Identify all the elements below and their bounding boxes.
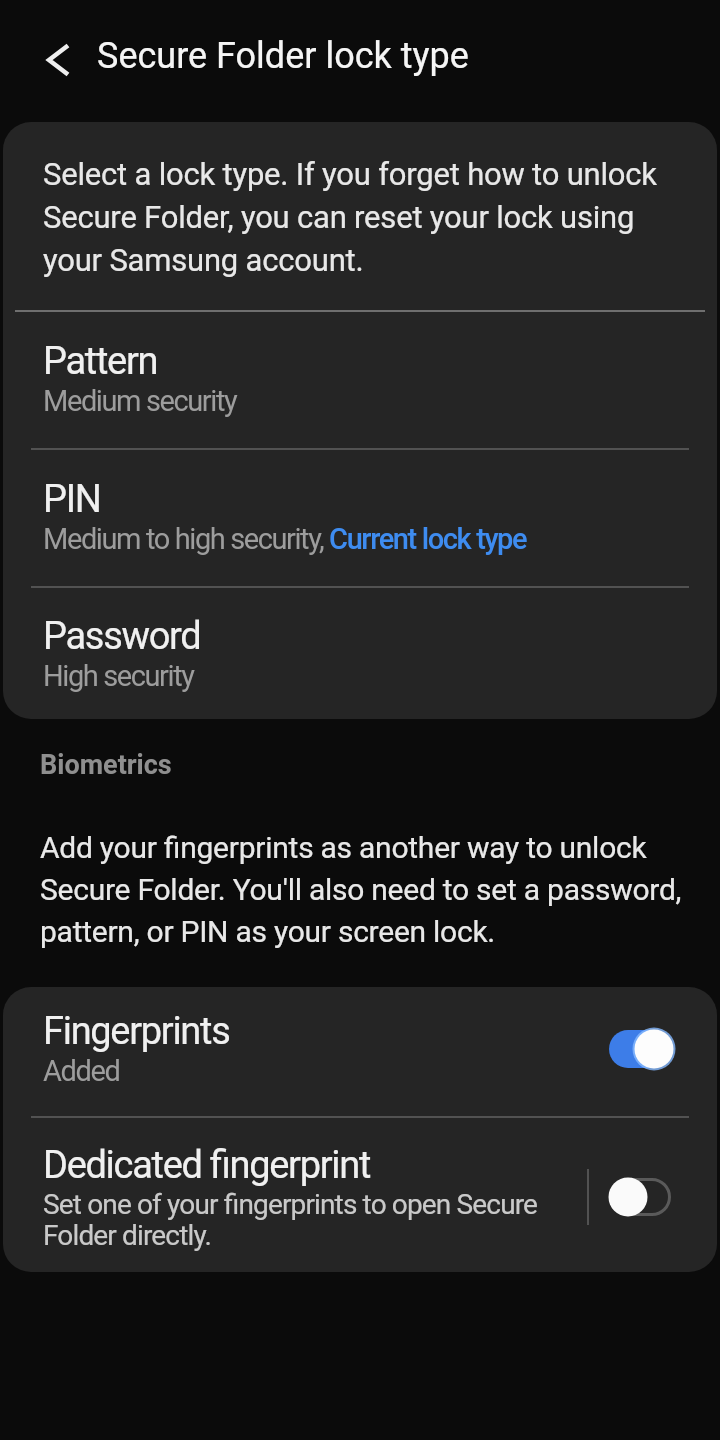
staticText: PIN [43,477,101,522]
staticText: Select a lock type. If you forget how to… [43,156,657,279]
staticText: Add your fingerprints as another way to … [40,830,682,950]
button[interactable]: PIN [3,450,717,586]
button[interactable]: Dedicated fingerprint [3,1118,717,1272]
button[interactable]: Pattern [3,312,717,448]
button[interactable] [607,1027,675,1071]
staticText: Medium to high security, Current lock ty… [43,522,527,556]
staticText: Set one of your fingerprints to open Sec… [43,1188,538,1251]
staticText: High security [43,659,194,693]
button[interactable]: Password [3,588,717,719]
button[interactable]: Fingerprints [3,987,717,1116]
button[interactable] [607,1175,675,1219]
button[interactable] [42,43,76,77]
staticText: Password [43,614,201,659]
staticText: Dedicated fingerprint [43,1143,371,1188]
staticText: Secure Folder lock type [97,35,469,77]
staticText: Biometrics [40,749,172,781]
staticText: Pattern [43,339,158,384]
staticText: Added [43,1054,120,1088]
staticText: Fingerprints [43,1009,230,1054]
staticText: Medium security [43,384,237,418]
